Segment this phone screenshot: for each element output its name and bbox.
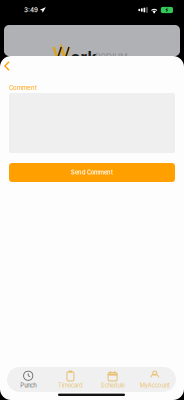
button[interactable]: Back (1, 58, 22, 74)
staticText: PODIUM (95, 52, 128, 62)
button[interactable]: Schedule (91, 367, 134, 392)
staticText: 3:49 (24, 6, 38, 14)
staticText: Schedule (101, 382, 125, 389)
staticText: Timecard (58, 382, 83, 389)
staticText: ork (70, 48, 96, 67)
button[interactable]: MyAccount (134, 367, 176, 392)
staticText: Send Comment (71, 169, 113, 176)
staticText: Comment (9, 84, 37, 91)
button[interactable]: Timecard (49, 367, 91, 392)
button[interactable]: Punch (7, 367, 49, 392)
staticText: MyAccount (140, 382, 170, 389)
staticText: Punch (20, 382, 36, 389)
button[interactable]: Send Comment (9, 163, 175, 182)
